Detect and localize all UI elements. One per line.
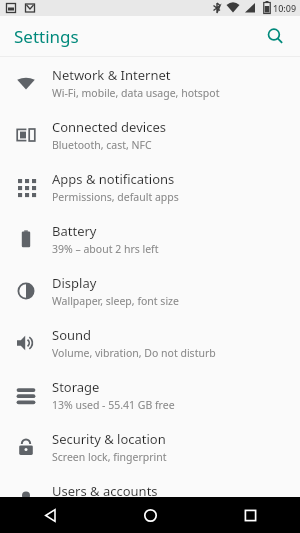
- staticText: Security & location: [52, 430, 166, 448]
- button[interactable]: Battery: [0, 213, 300, 265]
- staticText: Screen lock, fingerprint: [52, 450, 167, 464]
- staticText: Accounts: [52, 502, 97, 516]
- button[interactable]: Network & Internet: [0, 57, 300, 109]
- staticText: Sound: [52, 326, 92, 344]
- button[interactable]: Sound: [0, 317, 300, 369]
- staticText: 10:09: [273, 2, 297, 14]
- staticText: Volume, vibration, Do not disturb: [52, 346, 216, 360]
- button[interactable]: Users & accounts: [0, 473, 300, 525]
- staticText: Apps & notifications: [52, 170, 175, 188]
- button[interactable]: Apps & notifications: [0, 161, 300, 213]
- button[interactable]: Security & location: [0, 421, 300, 473]
- staticText: 13% used - 55.41 GB free: [52, 398, 175, 412]
- button[interactable]: Storage: [0, 369, 300, 421]
- staticText: Users & accounts: [52, 482, 158, 500]
- button[interactable]: Back: [0, 497, 100, 533]
- staticText: Wi-Fi, mobile, data usage, hotspot: [52, 86, 220, 100]
- staticText: Network & Internet: [52, 66, 171, 84]
- button[interactable]: Home: [100, 497, 200, 533]
- staticText: 39% – about 2 hrs left: [52, 242, 159, 256]
- staticText: Bluetooth, cast, NFC: [52, 138, 152, 152]
- staticText: Storage: [52, 378, 100, 396]
- staticText: Connected devices: [52, 118, 166, 136]
- staticText: Battery: [52, 222, 97, 240]
- staticText: Wallpaper, sleep, font size: [52, 294, 179, 308]
- button[interactable]: Search settings: [258, 19, 292, 53]
- staticText: Settings: [14, 25, 79, 48]
- staticText: Display: [52, 274, 97, 292]
- button[interactable]: Display: [0, 265, 300, 317]
- button[interactable]: Connected devices: [0, 109, 300, 161]
- staticText: Permissions, default apps: [52, 190, 179, 204]
- button[interactable]: Recent apps: [200, 497, 300, 533]
